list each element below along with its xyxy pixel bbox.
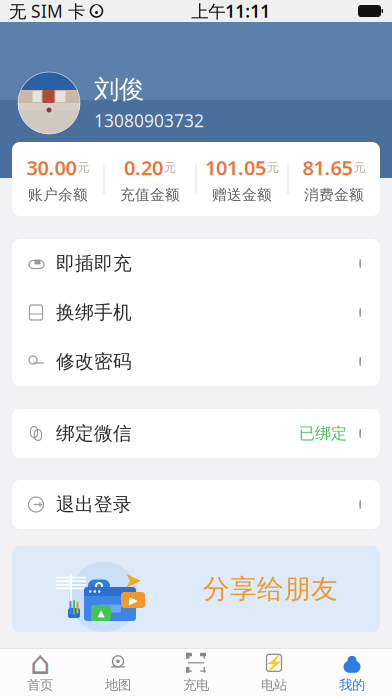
staticText: 地图 (105, 677, 131, 693)
button[interactable]: 分享给朋友 (12, 546, 380, 632)
button[interactable]: 绑定微信 (12, 409, 380, 458)
button[interactable]: 修改密码 (12, 337, 380, 386)
staticText: 电站 (261, 677, 287, 693)
button[interactable]: 我的 (313, 649, 391, 696)
staticText: 0.20 (124, 154, 163, 181)
staticText: 消费金额 (304, 186, 364, 204)
staticText: 赠送金额 (212, 186, 272, 204)
staticText: 上午11:11 (191, 0, 270, 22)
button[interactable]: 退出登录 (12, 480, 380, 529)
staticText: 我的 (339, 677, 365, 693)
staticText: 换绑手机 (56, 301, 132, 324)
staticText: 充值金额 (120, 186, 180, 204)
staticText: 充电 (183, 677, 209, 693)
button[interactable]: ⌂ (1, 649, 79, 696)
staticText: 即插即充 (56, 252, 132, 275)
staticText: 修改密码 (56, 350, 132, 373)
staticText: ▲ (97, 608, 104, 618)
staticText: ➤ (124, 568, 142, 592)
button[interactable]: 换绑手机 (12, 288, 380, 337)
staticText: ⚡ (265, 654, 283, 671)
staticText: 元 (77, 160, 89, 175)
button[interactable]: 地图 (79, 649, 157, 696)
staticText: 无 SIM 卡 (9, 0, 85, 22)
button[interactable]: 充电 (157, 649, 235, 696)
staticText: 81.65 (302, 154, 352, 181)
staticText: 首页 (27, 677, 53, 693)
button[interactable]: 即插即充 (12, 239, 380, 288)
staticText: 30.00 (26, 154, 76, 181)
staticText: 账户余额 (28, 186, 88, 204)
staticText: 刘俊 (94, 74, 144, 105)
staticText: 已绑定 (299, 424, 347, 443)
staticText: 13080903732 (94, 109, 204, 132)
staticText: 元 (164, 160, 176, 175)
staticText: ▶ (128, 593, 137, 607)
button[interactable]: ⚡ (235, 649, 313, 696)
staticText: ⌂ (30, 645, 50, 681)
staticText: 分享给朋友 (203, 573, 338, 605)
staticText: 101.05 (205, 154, 266, 181)
staticText: 元 (353, 160, 365, 175)
staticText: 绑定微信 (56, 422, 132, 445)
staticText: 元 (267, 160, 279, 175)
staticText: 退出登录 (56, 493, 132, 516)
